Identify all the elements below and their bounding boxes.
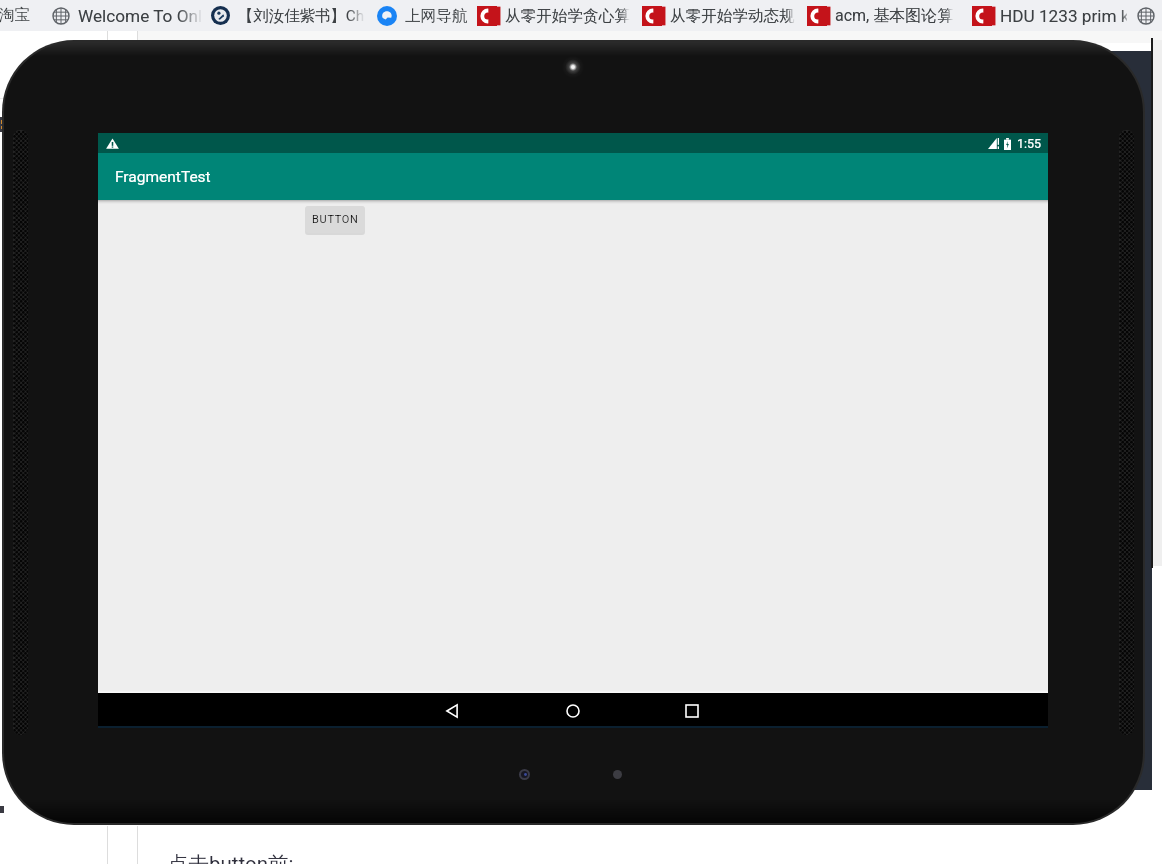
button[interactable]: 淘宝 — [0, 5, 31, 25]
button[interactable]: 从零开始学贪心算 — [467, 0, 632, 31]
button[interactable]: Back — [432, 693, 472, 728]
staticText: 从零开始学动态规 — [670, 6, 795, 26]
button[interactable]: 从零开始学动态规 — [632, 0, 797, 31]
button[interactable]: acm, 基本图论算 — [797, 0, 962, 31]
staticText: 点击button前: — [168, 851, 294, 864]
button[interactable]: New tab — [1129, 0, 1162, 31]
button[interactable]: BUTTON — [305, 206, 365, 233]
staticText: 上网导航 — [405, 6, 467, 26]
staticText: 从零开始学贪心算 — [505, 6, 630, 26]
button[interactable]: 【刘汝佳紫书】Ch — [201, 0, 367, 31]
staticText: BUTTON — [312, 213, 359, 226]
button[interactable]: 上网导航 — [367, 0, 467, 31]
staticText: 【刘汝佳紫书】Ch — [238, 6, 365, 25]
button[interactable]: Welcome To Onl — [42, 0, 201, 31]
staticText: 1:55 — [1017, 136, 1042, 151]
staticText: FragmentTest — [115, 168, 211, 186]
button[interactable]: Recent apps — [672, 693, 712, 728]
button[interactable]: HDU 1233 prim k — [962, 0, 1127, 31]
staticText: Welcome To Onl — [78, 6, 201, 26]
button[interactable]: Home — [553, 693, 593, 728]
staticText: HDU 1233 prim k — [1000, 6, 1127, 26]
staticText: acm, 基本图论算 — [835, 6, 954, 26]
